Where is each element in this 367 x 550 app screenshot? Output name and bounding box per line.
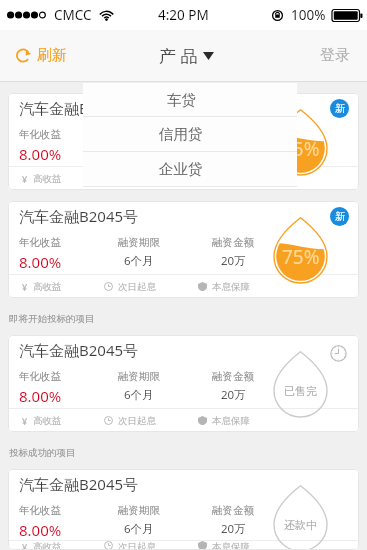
staticText: 融资金额	[212, 370, 254, 383]
staticText: ¥	[22, 281, 28, 293]
staticText: 年化收益	[19, 236, 61, 249]
button[interactable]: 企业贷	[83, 152, 297, 186]
button[interactable]: 登录	[306, 36, 367, 75]
staticText: 20万	[221, 145, 246, 161]
staticText: 6个月	[124, 387, 154, 403]
staticText: 4:20 PM	[158, 6, 209, 24]
button[interactable]: 汽车金融B2045号	[8, 469, 359, 550]
staticText: 75%	[282, 136, 320, 162]
button[interactable]: 汽车金融B2045号	[8, 201, 359, 298]
staticText: 6个月	[124, 145, 154, 161]
staticText: 融资期限	[118, 128, 160, 141]
staticText: 次日起息	[118, 281, 156, 293]
staticText: 8.00%	[19, 144, 62, 164]
staticText: 高收益	[33, 173, 62, 185]
staticText: 企业贷	[159, 160, 203, 178]
button[interactable]: 汽车金融B2045号	[8, 93, 359, 190]
button[interactable]: 产 品	[147, 34, 226, 77]
staticText: 汽车金融B2045号	[19, 340, 139, 360]
button[interactable]: 刷新	[0, 36, 81, 75]
staticText: ¥	[22, 173, 28, 185]
staticText: 本息保障	[212, 541, 250, 550]
staticText: 新	[335, 210, 345, 223]
button[interactable]: 车贷	[83, 83, 297, 116]
staticText: ¥	[22, 541, 28, 550]
staticText: 汽车金融B2045号	[19, 474, 139, 494]
staticText: 融资期限	[118, 236, 160, 249]
staticText: 20万	[221, 387, 246, 403]
staticText: 融资期限	[118, 370, 160, 383]
staticText: 高收益	[33, 281, 62, 293]
staticText: 登录	[320, 46, 350, 65]
staticText: 投标成功的项目	[9, 447, 76, 459]
button[interactable]: 汽车金融B2045号	[8, 335, 359, 432]
staticText: 高收益	[33, 541, 62, 550]
staticText: 100%	[291, 6, 326, 24]
staticText: 刷新	[37, 46, 67, 65]
staticText: 本息保障	[212, 415, 250, 427]
button[interactable]: 新产品	[330, 207, 349, 226]
staticText: 75%	[282, 244, 320, 270]
staticText: 8.00%	[19, 252, 62, 272]
staticText: 次日起息	[118, 541, 156, 550]
staticText: 车贷	[167, 91, 196, 109]
staticText: 年化收益	[19, 370, 61, 383]
staticText: 8.00%	[19, 520, 62, 540]
staticText: 6个月	[124, 253, 154, 269]
staticText: 高收益	[33, 415, 62, 427]
staticText: 年化收益	[19, 504, 61, 517]
staticText: 新	[335, 102, 345, 115]
staticText: 融资期限	[118, 504, 160, 517]
staticText: 融资金额	[212, 504, 254, 517]
staticText: 6个月	[124, 521, 154, 537]
staticText: 8.00%	[19, 386, 62, 406]
staticText: 20万	[221, 253, 246, 269]
button[interactable]: 即将开始	[330, 345, 347, 362]
button[interactable]: 信用贷	[83, 117, 297, 151]
staticText: 汽车金融B2045号	[19, 206, 139, 226]
staticText: 本息保障	[212, 281, 250, 293]
staticText: 产 品	[159, 44, 198, 67]
staticText: 20万	[221, 521, 246, 537]
staticText: 还款中	[284, 518, 317, 532]
staticText: 汽车金融B2045号	[19, 98, 139, 118]
staticText: 即将开始投标的项目	[9, 313, 95, 325]
staticText: ¥	[22, 415, 28, 427]
staticText: 融资金额	[212, 236, 254, 249]
staticText: 次日起息	[118, 415, 156, 427]
staticText: 信用贷	[159, 125, 203, 143]
staticText: CMCC	[54, 6, 92, 24]
staticText: 已售完	[284, 384, 317, 398]
staticText: 年化收益	[19, 128, 61, 141]
button[interactable]: 新产品	[330, 99, 349, 118]
